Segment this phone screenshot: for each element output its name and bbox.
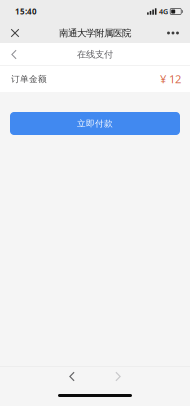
staticText: 立即付款 <box>77 118 113 129</box>
button[interactable]: Back <box>3 43 25 65</box>
button[interactable]: More <box>162 22 184 43</box>
button[interactable]: Back <box>57 366 87 386</box>
staticText: 15:40 <box>15 6 37 17</box>
staticText: 南通大学附属医院 <box>59 27 131 39</box>
staticText: 在线支付 <box>77 49 113 60</box>
staticText: 订单金额 <box>11 73 47 84</box>
staticText: 4G <box>159 7 168 16</box>
staticText: ¥ 12 <box>160 71 181 87</box>
button[interactable]: Close <box>4 22 26 43</box>
button[interactable]: 立即付款 <box>10 112 180 135</box>
button[interactable]: Forward <box>103 366 133 386</box>
